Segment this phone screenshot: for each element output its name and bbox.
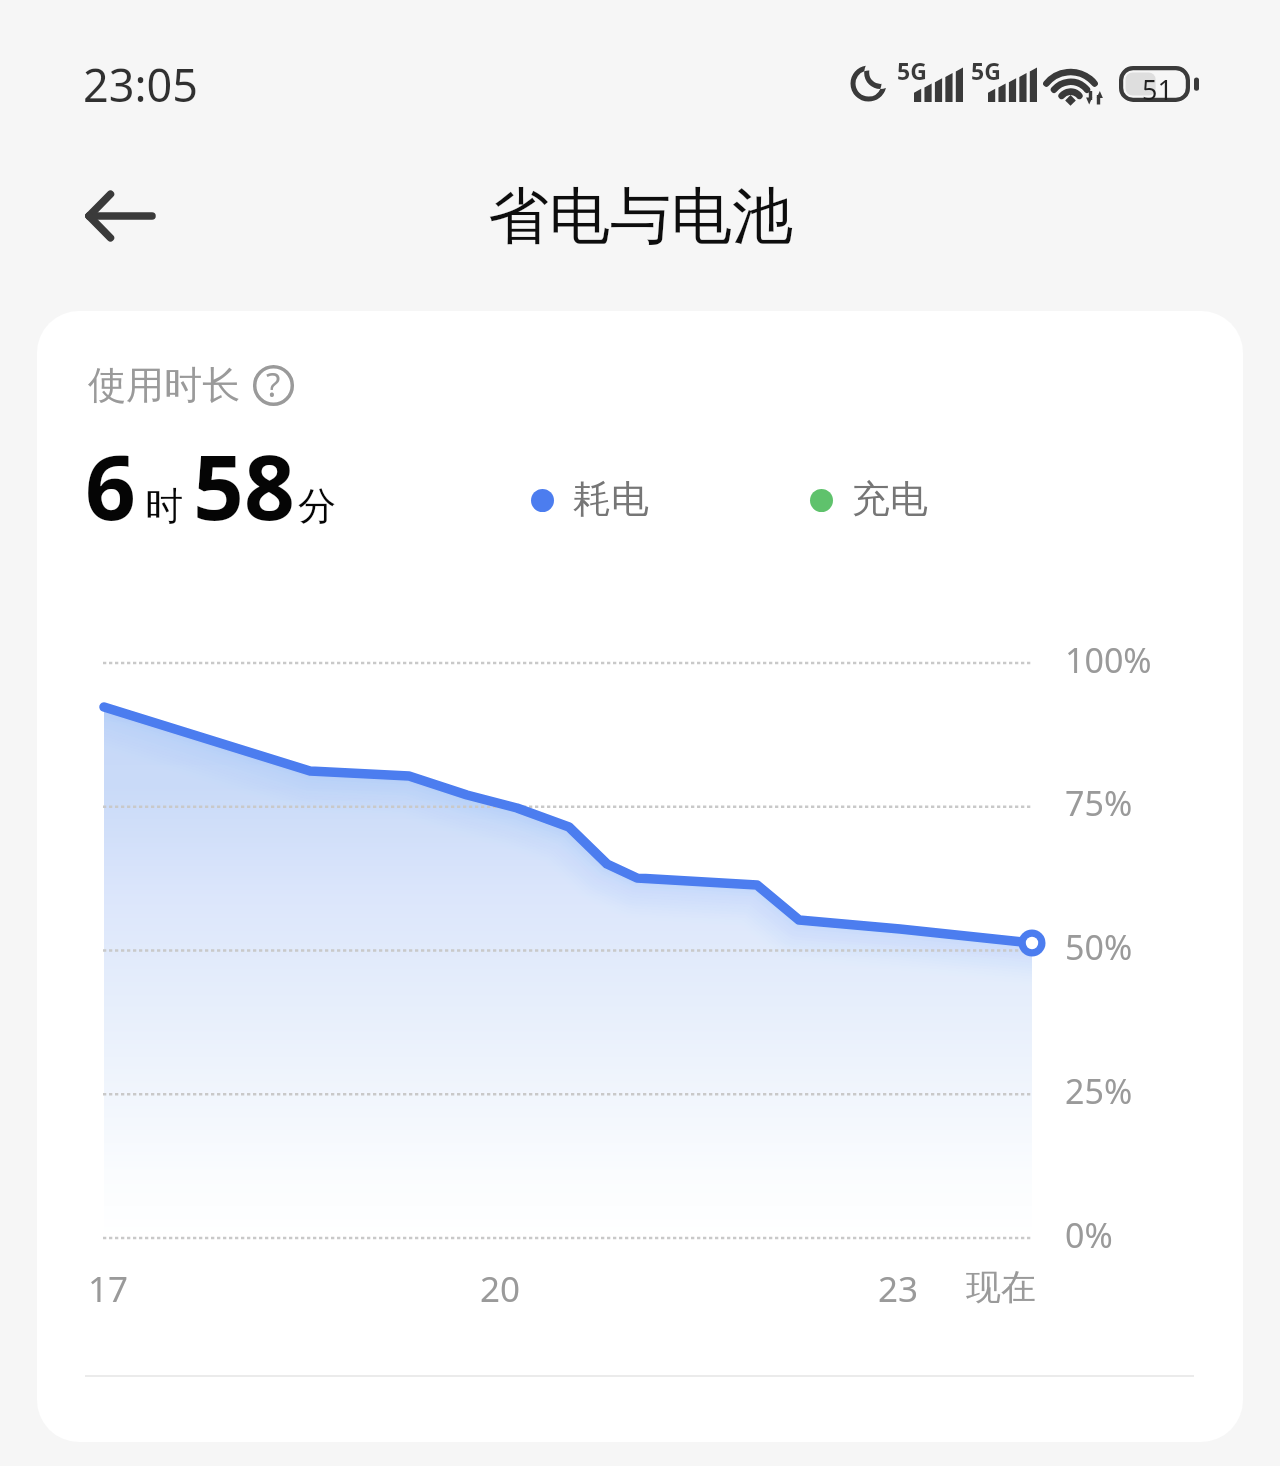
staticText: 51 xyxy=(1142,71,1173,108)
staticText: 50% xyxy=(1065,924,1133,970)
staticText: 充电 xyxy=(852,475,928,523)
button[interactable]: Back xyxy=(62,166,162,266)
staticText: 23 xyxy=(878,1265,919,1313)
staticText: 17 xyxy=(88,1265,129,1313)
staticText: 25% xyxy=(1065,1068,1133,1114)
staticText: 使用时长 xyxy=(88,361,240,409)
staticText: 5G xyxy=(971,55,1001,86)
staticText: 耗电 xyxy=(573,475,649,523)
staticText: 时 xyxy=(145,482,183,530)
staticText: 6 xyxy=(85,425,136,546)
staticText: ? xyxy=(266,362,281,406)
staticText: 100% xyxy=(1065,637,1152,683)
staticText: 现在 xyxy=(966,1265,1036,1309)
staticText: 0% xyxy=(1065,1212,1113,1258)
staticText: 58 xyxy=(193,425,295,546)
staticText: 5G xyxy=(897,55,927,86)
staticText: 分 xyxy=(298,482,336,530)
staticText: 23:05 xyxy=(83,54,199,115)
staticText: 20 xyxy=(480,1265,521,1313)
staticText: 75% xyxy=(1065,780,1133,826)
button[interactable]: Help xyxy=(251,363,295,407)
staticText: 省电与电池 xyxy=(488,178,793,255)
